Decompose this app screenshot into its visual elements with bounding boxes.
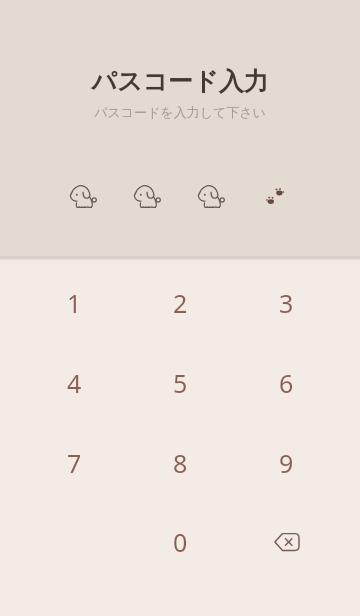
button[interactable]: 1 [44,277,104,329]
button[interactable]: 4 [44,357,104,409]
staticText: パスコード入力 [0,66,360,97]
staticText: 5 [173,366,188,400]
button[interactable]: 2 [150,277,210,329]
staticText: 1 [67,286,82,320]
staticText: 0 [173,525,188,559]
staticText: 7 [67,446,82,480]
button[interactable]: 5 [150,357,210,409]
button[interactable]: Delete [257,516,317,568]
button[interactable]: 9 [256,437,316,489]
button[interactable]: 0 [150,516,210,568]
staticText: パスコードを入力して下さい [0,104,360,120]
staticText: 8 [173,446,188,480]
button[interactable]: 7 [44,437,104,489]
staticText: 2 [173,286,188,320]
staticText: 3 [279,286,294,320]
button[interactable]: 6 [256,357,316,409]
staticText: 4 [67,366,82,400]
button[interactable]: 8 [150,437,210,489]
staticText: 6 [279,366,294,400]
staticText: 9 [279,446,294,480]
button[interactable]: 3 [256,277,316,329]
